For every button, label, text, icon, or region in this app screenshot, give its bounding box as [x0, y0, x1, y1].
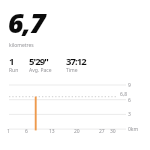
staticText: 3 [128, 111, 131, 118]
staticText: 27 [99, 128, 105, 135]
staticText: 6 [25, 128, 28, 135]
staticText: kilometres [9, 42, 34, 49]
staticText: 37:12 [66, 55, 86, 68]
staticText: 20 [74, 128, 80, 135]
staticText: 9 [128, 82, 131, 89]
staticText: 0km [128, 126, 139, 133]
staticText: Time [66, 67, 78, 74]
staticText: 6,8 [120, 91, 128, 98]
staticText: Run [9, 67, 19, 74]
staticText: 30 [110, 128, 116, 135]
staticText: 5'29" [29, 55, 48, 68]
staticText: 13 [49, 128, 55, 135]
staticText: Avg. Pace [29, 67, 52, 74]
staticText: 6 [128, 97, 131, 104]
staticText: 6,7 [8, 4, 45, 41]
staticText: 1 [7, 128, 10, 135]
staticText: 1 [9, 55, 14, 68]
